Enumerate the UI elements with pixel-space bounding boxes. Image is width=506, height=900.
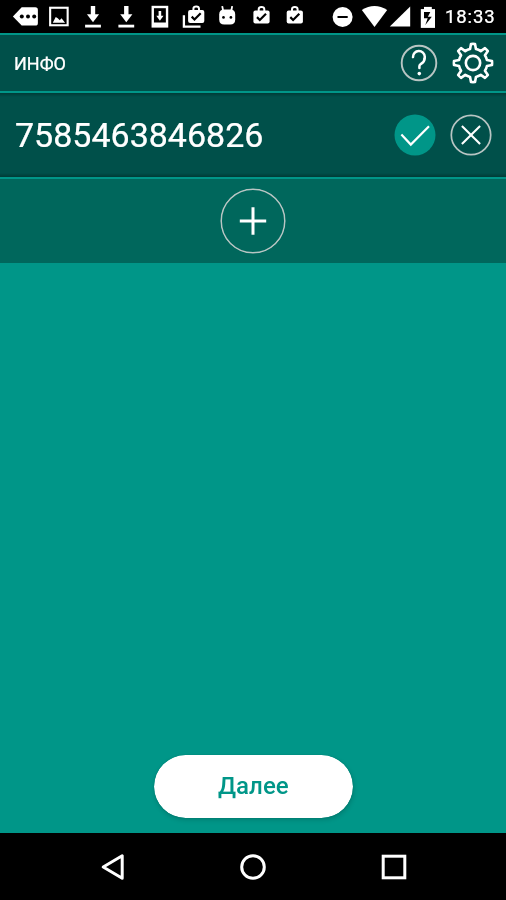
button[interactable]: Help (395, 39, 443, 87)
button[interactable]: Recents (368, 841, 420, 893)
button[interactable]: Clear (447, 111, 495, 159)
button[interactable]: Add (220, 188, 286, 254)
button[interactable]: Confirm (391, 111, 439, 159)
button[interactable]: Back (87, 841, 139, 893)
button[interactable]: Далее (154, 755, 353, 818)
staticText: Далее (218, 772, 289, 800)
button[interactable]: Settings (449, 39, 497, 87)
staticText: 7585463846826 (15, 115, 264, 155)
staticText: 18:33 (445, 6, 496, 28)
staticText: ИНФО (14, 53, 66, 74)
button[interactable]: Home (227, 841, 279, 893)
